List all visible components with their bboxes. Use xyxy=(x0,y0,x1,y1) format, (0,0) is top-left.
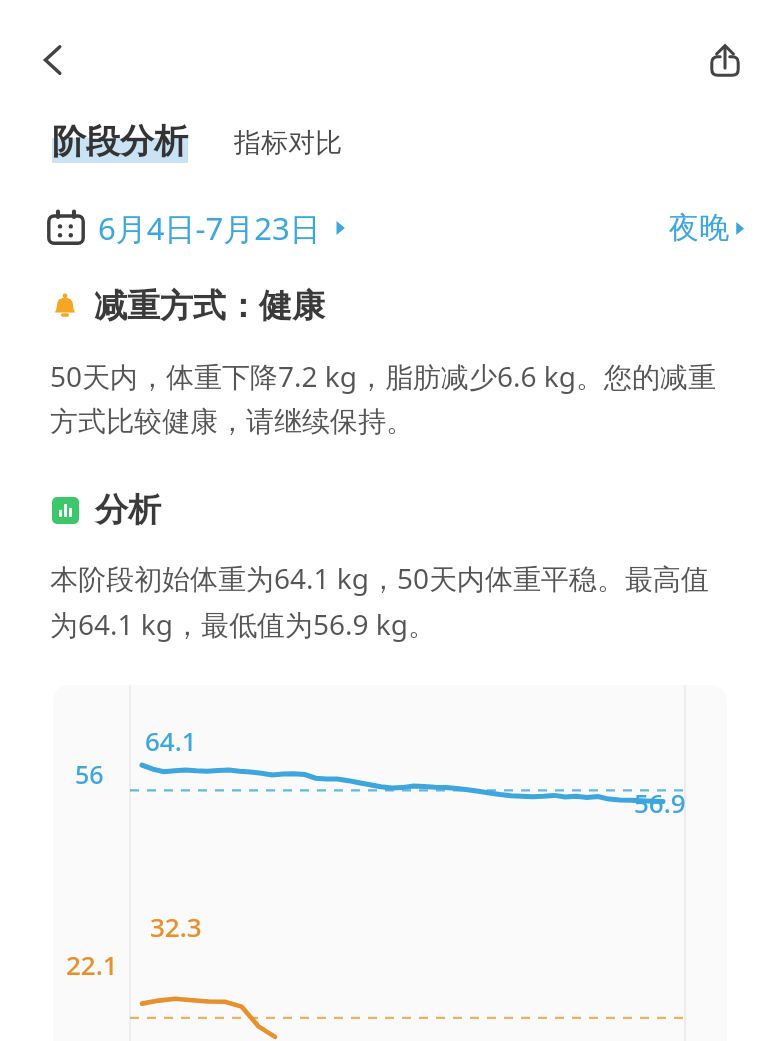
staticText: 56 xyxy=(75,757,104,791)
staticText: 指标对比 xyxy=(234,126,342,160)
button[interactable]: 阶段分析 xyxy=(52,120,188,163)
staticText: 22.1 xyxy=(66,947,118,982)
button[interactable]: 6月4日-7月23日 xyxy=(46,207,347,249)
staticText: 夜晚 xyxy=(669,209,729,247)
button[interactable]: Back xyxy=(22,29,84,91)
staticText: 分析 xyxy=(95,489,161,531)
staticText: 50天内，体重下降7.2 kg，脂肪减少6.6 kg。您的减重方式比较健康，请继… xyxy=(50,357,724,439)
staticText: 64.1 xyxy=(145,723,197,758)
button[interactable]: Share xyxy=(694,29,756,91)
staticText: 阶段分析 xyxy=(52,120,188,163)
staticText: 32.3 xyxy=(150,909,202,944)
button[interactable]: 指标对比 xyxy=(234,126,342,163)
staticText: 56.9 xyxy=(634,785,686,820)
staticText: 6月4日-7月23日 xyxy=(98,207,321,249)
staticText: 减重方式：健康 xyxy=(94,285,325,327)
staticText: 本阶段初始体重为64.1 kg，50天内体重平稳。最高值为64.1 kg，最低值… xyxy=(50,559,728,643)
button[interactable]: 夜晚 xyxy=(669,209,746,247)
